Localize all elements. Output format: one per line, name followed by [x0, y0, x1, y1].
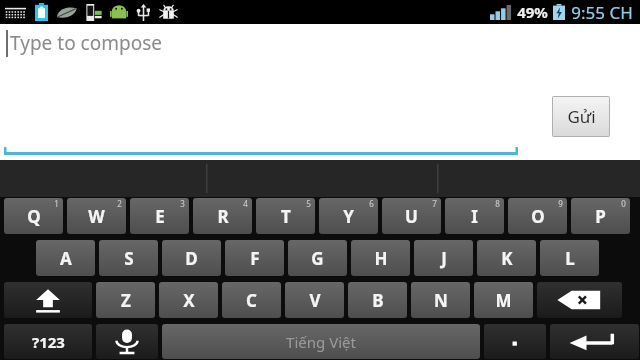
staticText: 9: [558, 198, 563, 209]
button[interactable]: Gửi: [553, 97, 609, 136]
button[interactable]: Shift: [4, 282, 92, 318]
staticText: F: [250, 247, 260, 270]
button[interactable]: I: [445, 198, 504, 234]
button[interactable]: C: [222, 282, 281, 318]
button[interactable]: Voice input: [96, 324, 158, 359]
staticText: 9:55 CH: [571, 1, 633, 24]
button[interactable]: T: [256, 198, 315, 234]
button[interactable]: F: [225, 240, 284, 276]
staticText: G: [311, 247, 324, 270]
button[interactable]: S: [99, 240, 158, 276]
staticText: 4: [243, 198, 248, 209]
staticText: P: [595, 205, 606, 228]
staticText: E: [155, 205, 165, 228]
button[interactable]: Z: [96, 282, 155, 318]
button[interactable]: H: [351, 240, 410, 276]
staticText: B: [372, 289, 384, 312]
staticText: A: [60, 247, 72, 270]
button[interactable]: Period: [484, 324, 546, 359]
staticText: 7: [432, 198, 437, 209]
button[interactable]: P: [571, 198, 630, 234]
staticText: 1: [54, 198, 59, 209]
staticText: 0: [621, 198, 626, 209]
button[interactable]: Tiếng Việt: [162, 324, 480, 359]
button[interactable]: Symbols: [4, 324, 92, 359]
button[interactable]: Q: [4, 198, 63, 234]
button[interactable]: O: [508, 198, 567, 234]
button[interactable]: J: [414, 240, 473, 276]
staticText: 3: [180, 198, 185, 209]
staticText: 49%: [517, 2, 548, 22]
button[interactable]: A: [36, 240, 95, 276]
staticText: Q: [27, 205, 41, 228]
button[interactable]: B: [348, 282, 407, 318]
button[interactable]: G: [288, 240, 347, 276]
button[interactable]: E: [130, 198, 189, 234]
staticText: Gửi: [567, 105, 596, 128]
button[interactable]: D: [162, 240, 221, 276]
button[interactable]: X: [159, 282, 218, 318]
staticText: L: [565, 247, 575, 270]
staticText: 2: [117, 198, 122, 209]
staticText: T: [281, 205, 291, 228]
staticText: V: [309, 289, 321, 312]
button[interactable]: Enter: [550, 324, 639, 359]
staticText: O: [531, 205, 545, 228]
button[interactable]: U: [382, 198, 441, 234]
button[interactable]: W: [67, 198, 126, 234]
staticText: R: [217, 205, 229, 228]
button[interactable]: Backspace: [537, 282, 622, 318]
staticText: D: [185, 247, 198, 270]
staticText: H: [374, 247, 388, 270]
staticText: M: [495, 289, 512, 312]
staticText: ?123: [32, 332, 65, 352]
staticText: K: [501, 247, 513, 270]
button[interactable]: M: [474, 282, 533, 318]
staticText: N: [434, 289, 448, 312]
staticText: U: [405, 205, 418, 228]
staticText: J: [441, 247, 447, 270]
staticText: Type to compose: [10, 30, 162, 56]
staticText: Z: [121, 289, 131, 312]
staticText: I: [471, 205, 478, 228]
staticText: Tiếng Việt: [286, 332, 356, 352]
button[interactable]: L: [540, 240, 599, 276]
staticText: X: [183, 289, 195, 312]
staticText: C: [246, 289, 257, 312]
staticText: Y: [343, 205, 354, 228]
button[interactable]: V: [285, 282, 344, 318]
staticText: 6: [369, 198, 374, 209]
button[interactable]: R: [193, 198, 252, 234]
staticText: 8: [495, 198, 500, 209]
staticText: 5: [306, 198, 311, 209]
button[interactable]: N: [411, 282, 470, 318]
button[interactable]: Y: [319, 198, 378, 234]
button[interactable]: K: [477, 240, 536, 276]
staticText: S: [124, 247, 134, 270]
staticText: W: [88, 205, 105, 228]
